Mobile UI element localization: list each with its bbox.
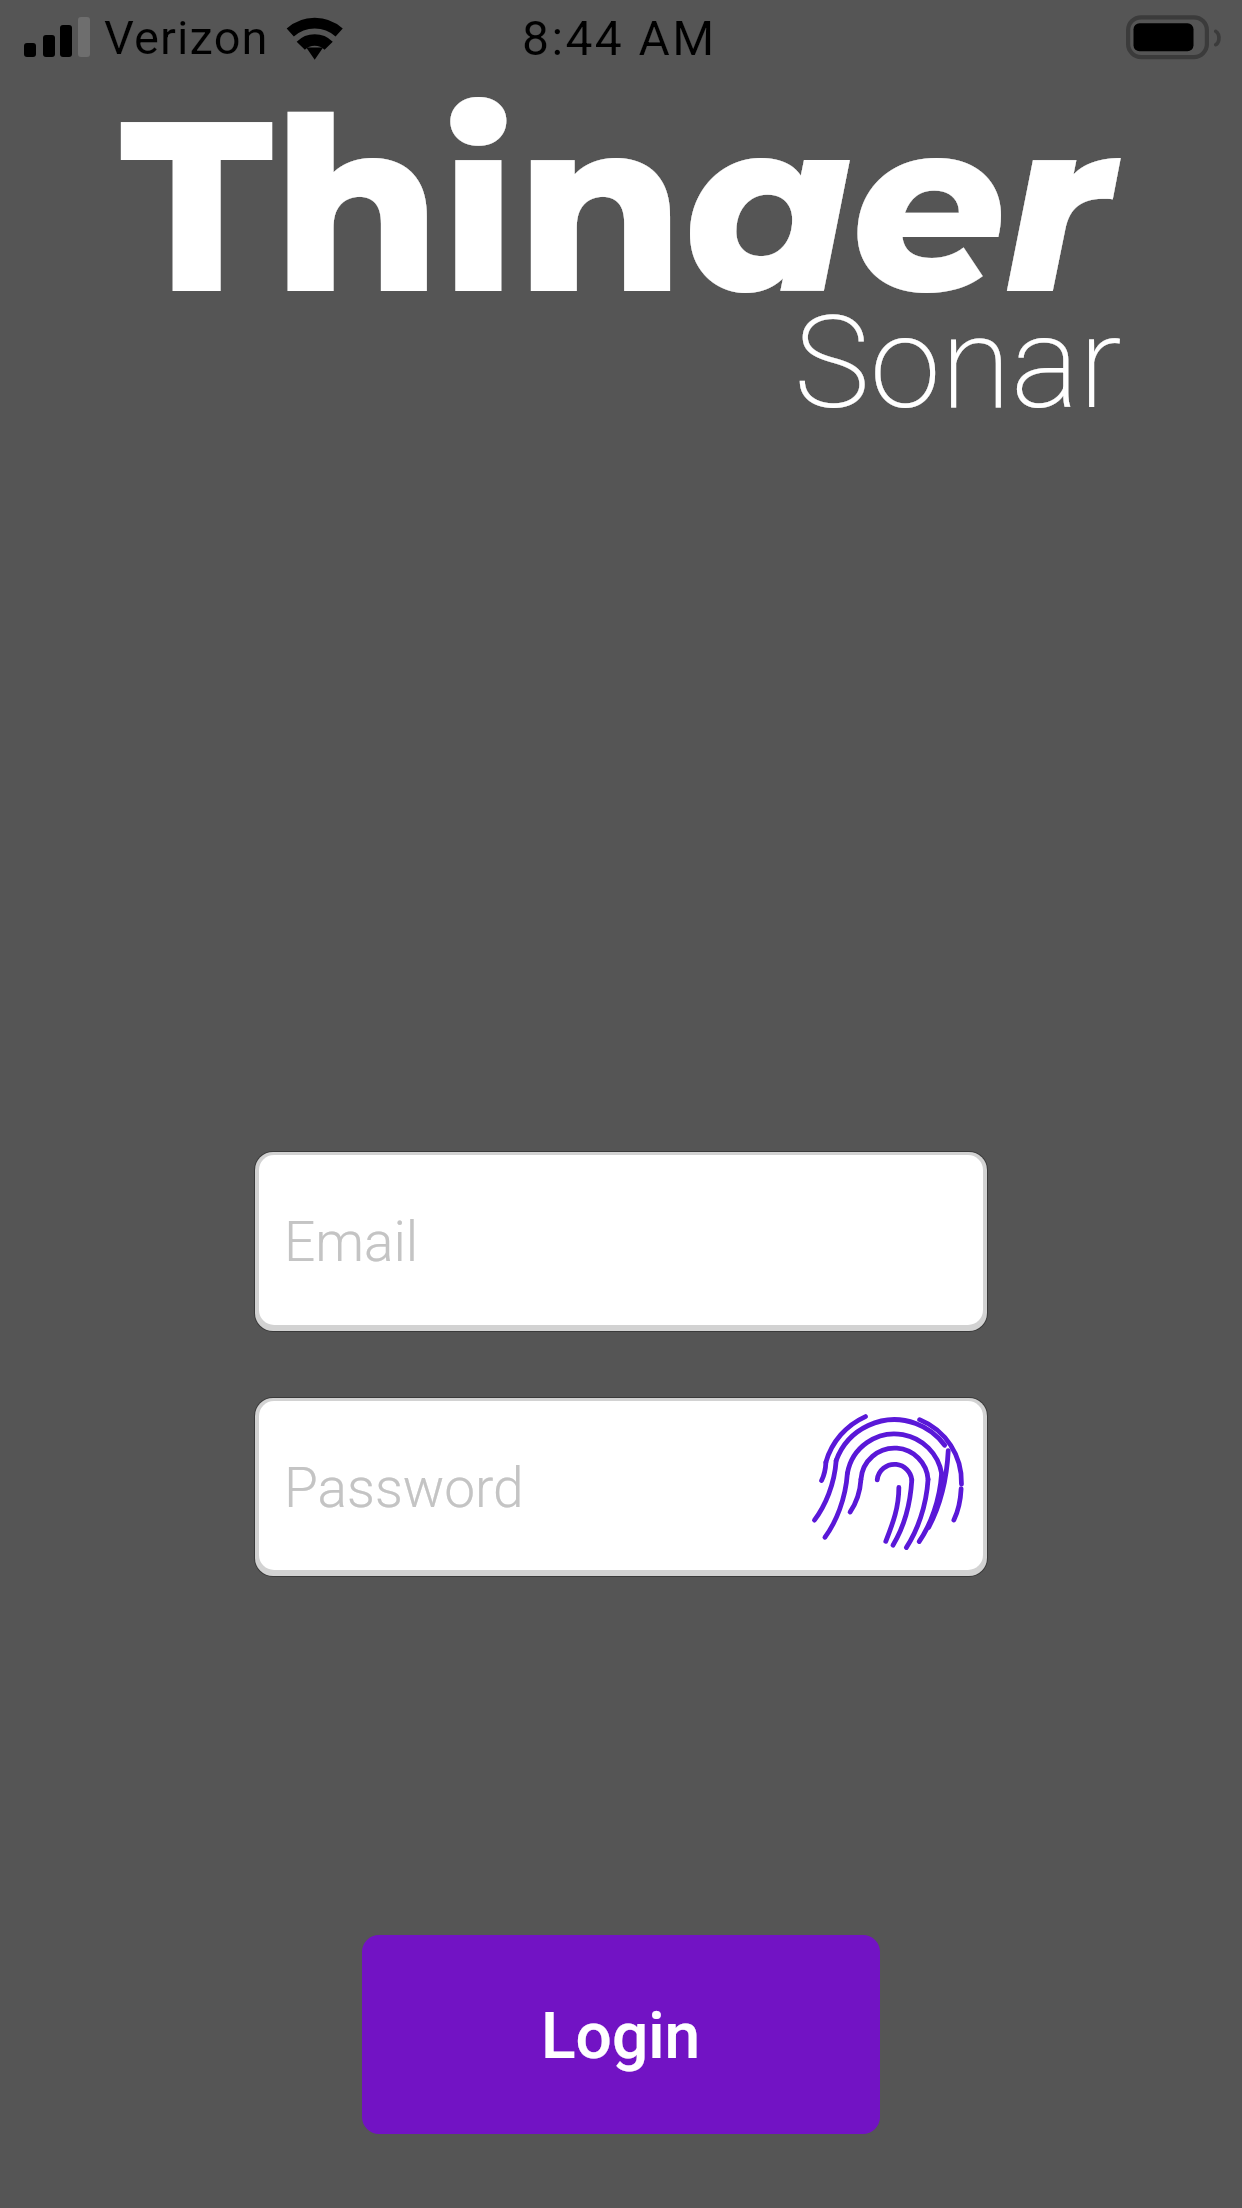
- other: Wi-Fi: [286, 17, 344, 61]
- staticText: Sonar: [794, 288, 1122, 438]
- other: Cellular signal: [20, 0, 120, 80]
- staticText: Email: [284, 1210, 419, 1274]
- other: Battery: [1126, 13, 1221, 63]
- button[interactable]: Password: [254, 1397, 988, 1577]
- staticText: Verizon: [104, 10, 269, 65]
- button[interactable]: Login: [362, 1935, 880, 2134]
- staticText: Password: [284, 1456, 524, 1520]
- staticText: Thinaer: [120, 58, 1112, 352]
- staticText: 8:44 AM: [522, 10, 717, 66]
- button[interactable]: Sign in with fingerprint: [822, 1415, 967, 1557]
- staticText: Login: [541, 1999, 701, 2074]
- button[interactable]: Email: [254, 1151, 988, 1332]
